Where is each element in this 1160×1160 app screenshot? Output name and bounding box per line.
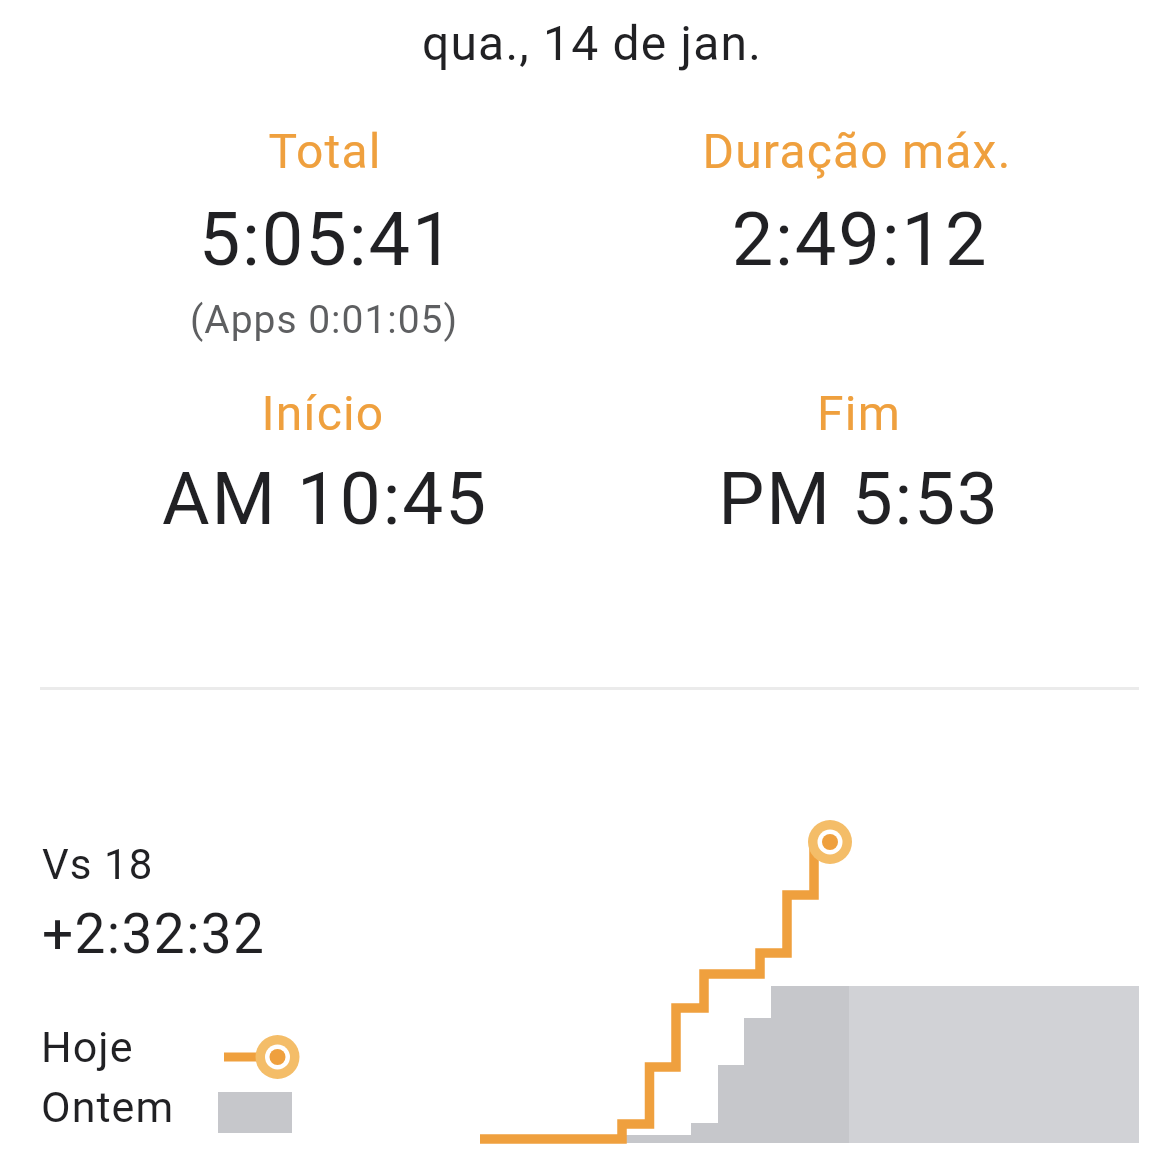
staticText: Ontem bbox=[41, 1082, 175, 1132]
button[interactable] bbox=[30, 1080, 305, 1138]
button[interactable] bbox=[580, 108, 1140, 356]
staticText: AM 10:45 bbox=[0, 456, 825, 542]
button[interactable] bbox=[30, 830, 290, 965]
other: Legenda do gráfico bbox=[210, 1025, 310, 1145]
staticText: Vs 18 bbox=[42, 840, 154, 889]
staticText: Duração máx. bbox=[357, 123, 1160, 179]
other: Gráfico de tempo de uso acumulado bbox=[440, 800, 1160, 1160]
button[interactable] bbox=[330, 4, 850, 88]
staticText: qua., 14 de jan. bbox=[92, 15, 1092, 71]
staticText: Total bbox=[0, 123, 825, 179]
button[interactable] bbox=[580, 370, 1140, 540]
staticText: PM 5:53 bbox=[359, 456, 1160, 542]
staticText: (Apps 0:01:05) bbox=[0, 297, 824, 343]
button[interactable] bbox=[20, 108, 580, 356]
staticText: Início bbox=[0, 385, 823, 441]
staticText: 5:05:41 bbox=[0, 196, 827, 283]
staticText: Fim bbox=[359, 385, 1160, 441]
button[interactable] bbox=[30, 1018, 305, 1076]
staticText: +2:32:32 bbox=[42, 902, 266, 966]
button[interactable] bbox=[20, 370, 580, 540]
staticText: Hoje bbox=[41, 1022, 134, 1072]
staticText: 2:49:12 bbox=[360, 196, 1160, 283]
